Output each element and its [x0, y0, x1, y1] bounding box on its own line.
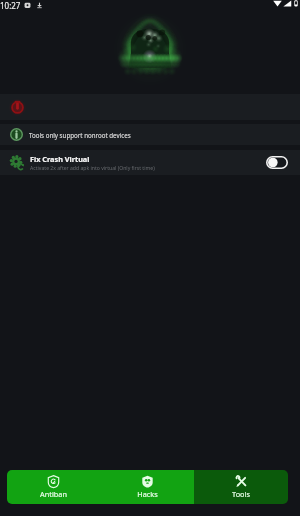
staticText: Tools: [232, 489, 250, 499]
button[interactable]: Stop: [0, 94, 300, 120]
button[interactable]: Tools: [194, 470, 288, 504]
staticText: Fix Crash Virtual: [30, 154, 90, 164]
staticText: Hacks: [137, 489, 158, 499]
button[interactable]: Antiban: [7, 470, 100, 504]
staticText: Tools only support nonroot devices: [29, 131, 131, 139]
button[interactable]: Tools only support nonroot devices: [0, 124, 300, 145]
staticText: Antiban: [40, 489, 67, 499]
button[interactable]: Fix Crash Virtual toggle: [266, 156, 288, 169]
button[interactable]: Hacks: [100, 470, 194, 504]
staticText: Activate 2x after add apk into virtual (…: [30, 165, 155, 172]
button[interactable]: Fix Crash Virtual: [0, 150, 300, 175]
staticText: 10:27: [0, 0, 21, 11]
